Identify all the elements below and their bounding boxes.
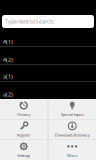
button[interactable]: More xyxy=(48,140,96,160)
button[interactable]: Settings xyxy=(0,140,47,160)
button[interactable]: Type here to search. xyxy=(2,15,94,28)
staticText: History xyxy=(17,112,30,117)
button[interactable]: Special topics xyxy=(48,99,96,119)
staticText: A(1) xyxy=(3,38,13,45)
button[interactable]: A(2) xyxy=(0,47,96,65)
button[interactable]: History xyxy=(0,99,47,119)
staticText: Settings xyxy=(17,153,30,158)
button[interactable]: A(1) xyxy=(0,30,96,47)
button[interactable]: Register xyxy=(0,119,47,139)
button[interactable]: a(1) xyxy=(0,65,96,82)
staticText: Special topics xyxy=(61,112,84,117)
staticText: A(2) xyxy=(3,56,13,63)
staticText: Register xyxy=(17,132,31,138)
staticText: Download dictionary xyxy=(55,132,90,138)
staticText: More xyxy=(67,153,77,158)
button[interactable]: a(2) xyxy=(0,82,96,100)
staticText: Type here to search. xyxy=(5,18,54,25)
staticText: a(2) xyxy=(3,91,13,98)
button[interactable]: Download dictionary xyxy=(48,119,96,139)
staticText: a(1) xyxy=(3,73,13,80)
